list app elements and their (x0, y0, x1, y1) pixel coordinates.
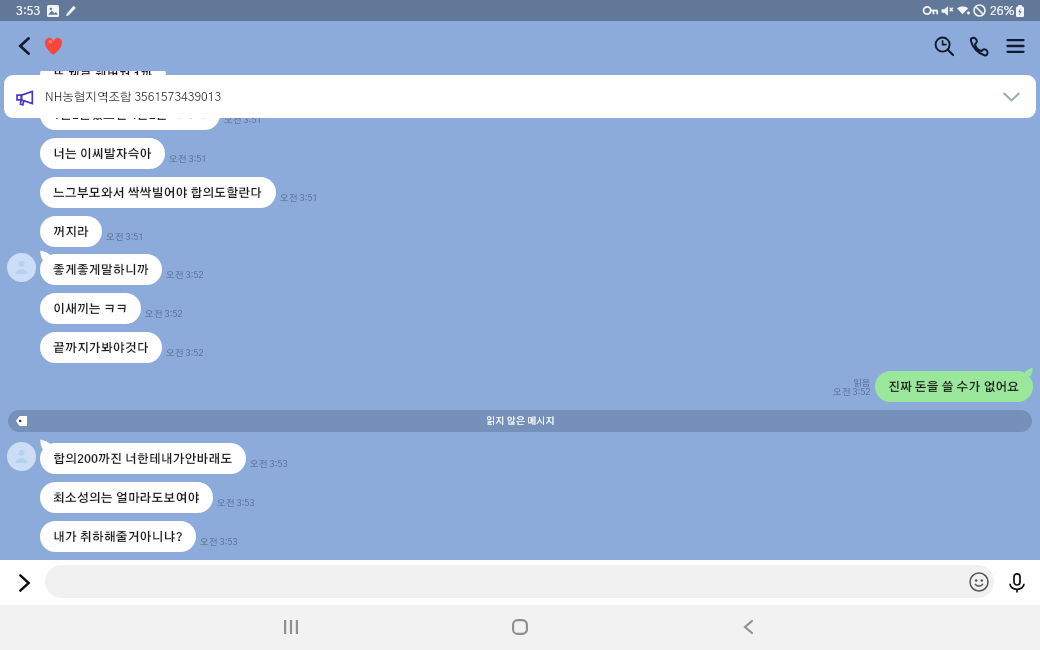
staticText: 뜻 제로 채번져 1까 (53, 70, 153, 82)
button[interactable]: More options (2, 561, 46, 605)
button[interactable]: 끝까지가봐야것다 (40, 332, 162, 363)
button[interactable]: Chat title (34, 28, 70, 64)
staticText: 이새끼는 ㅋㅋ (53, 303, 128, 315)
staticText: 오전 3:53 (217, 499, 255, 508)
button[interactable]: 느그부모와서 싹싹빌어야 합의도할란다 (40, 177, 276, 208)
staticText: 오전 3:53 (250, 460, 288, 469)
button[interactable]: Back (2, 24, 46, 68)
staticText: 오전 3:52 (166, 271, 204, 280)
staticText: 오전 3:51 (106, 233, 144, 242)
staticText: 너는 이씨발자슥아 (53, 148, 152, 160)
staticText: 꺼지라 (53, 226, 89, 238)
button[interactable]: Voice input (998, 564, 1036, 602)
staticText: 내가 취하해줄거아니냐? (53, 531, 183, 543)
button[interactable]: Emoji (45, 565, 994, 598)
staticText: 최소성의는 얼마라도보여야 (53, 492, 200, 504)
button[interactable]: 좋게좋게말하니까 (40, 254, 162, 285)
button[interactable]: Recents (269, 605, 313, 649)
staticText: 오전 3:51 (280, 194, 318, 203)
button[interactable]: Menu (993, 24, 1037, 68)
staticText: 오전 3:52 (833, 388, 871, 397)
button[interactable]: 너는 이씨발자슥아 (40, 138, 165, 169)
staticText: 26% (990, 5, 1015, 17)
staticText: 좋게좋게말하니까 (53, 264, 149, 276)
button[interactable]: Emoji (962, 565, 994, 598)
button[interactable]: 뜻 제로 채번져 1까 (40, 60, 166, 91)
button[interactable]: 진짜 돈을 쓸 수가 없어요 (875, 371, 1033, 402)
button[interactable]: 1분2분했으면 4분2분 ㄱㄱㄱ (40, 99, 220, 130)
button[interactable]: Profile (7, 442, 36, 471)
button[interactable]: Call (957, 24, 1001, 68)
staticText: 읽음 (853, 379, 871, 388)
button[interactable]: 이새끼는 ㅋㅋ (40, 293, 141, 324)
staticText: 3:53 (16, 5, 41, 17)
staticText: 오전 3:51 (169, 155, 207, 164)
staticText: 오전 3:53 (200, 538, 238, 547)
staticText: NH농협지역조합 3561573439013 (45, 91, 222, 103)
staticText: 1분2분했으면 4분2분 ㄱㄱㄱ (53, 109, 207, 121)
button[interactable]: Expand notice (994, 80, 1028, 114)
button[interactable]: Home (498, 605, 542, 649)
button[interactable]: NH농협지역조합 3561573439013 (4, 75, 1036, 118)
button[interactable]: Back (726, 605, 770, 649)
staticText: 합의200까진 너한테내가안바래도 (53, 453, 233, 465)
staticText: 끝까지가봐야것다 (53, 342, 149, 354)
staticText: 오전 3:52 (145, 310, 183, 319)
button[interactable]: Profile (7, 253, 36, 282)
button[interactable]: Search (922, 24, 966, 68)
staticText: 읽지 않은 메시지 (486, 416, 555, 426)
staticText: 진짜 돈을 쓸 수가 없어요 (888, 381, 1020, 393)
button[interactable]: 내가 취하해줄거아니냐? (40, 521, 196, 552)
staticText: 오전 3:52 (166, 349, 204, 358)
staticText: 오전 3:51 (224, 116, 262, 125)
button[interactable]: 꺼지라 (40, 216, 102, 247)
button[interactable]: 합의200까진 너한테내가안바래도 (40, 443, 246, 474)
staticText: 느그부모와서 싹싹빌어야 합의도할란다 (53, 187, 263, 199)
button[interactable]: 최소성의는 얼마라도보여야 (40, 482, 213, 513)
